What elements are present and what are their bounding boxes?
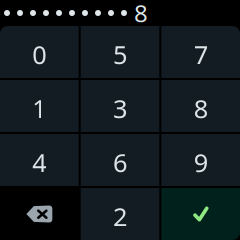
staticText: 3	[113, 92, 127, 125]
staticText: 8	[194, 92, 208, 125]
button[interactable]: 2	[81, 188, 159, 240]
button[interactable]: 8	[161, 80, 240, 132]
staticText: 0	[32, 38, 46, 71]
button[interactable]: 0	[0, 26, 79, 78]
button[interactable]: 6	[81, 134, 159, 186]
staticText: 4	[32, 146, 46, 179]
button[interactable]: 1	[0, 80, 79, 132]
staticText: 1	[32, 92, 46, 125]
staticText: 7	[194, 38, 208, 71]
button[interactable]: 7	[161, 26, 240, 78]
staticText: 9	[194, 146, 208, 179]
staticText: 5	[113, 38, 127, 71]
button[interactable]: Delete	[0, 188, 79, 240]
staticText: 8	[134, 0, 148, 29]
button[interactable]: 4	[0, 134, 79, 186]
button[interactable]: 3	[81, 80, 159, 132]
staticText: 2	[113, 200, 127, 233]
button[interactable]: 5	[81, 26, 159, 78]
button[interactable]: 9	[161, 134, 240, 186]
button[interactable]: Confirm	[161, 188, 240, 240]
staticText: 6	[113, 146, 127, 179]
